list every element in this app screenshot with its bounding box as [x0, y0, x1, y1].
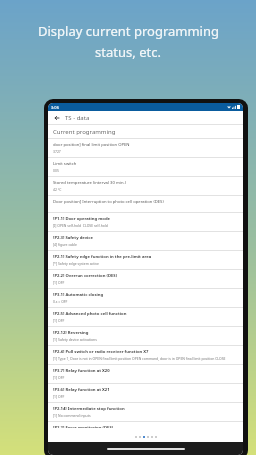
- button[interactable]: Stored temperature (interval 30 min.): [48, 177, 243, 195]
- staticText: 3:06: [51, 105, 59, 110]
- staticText: [1] OFF: [53, 375, 65, 380]
- button[interactable]: [P2.4] Pull switch or radio receiver fun…: [48, 346, 243, 364]
- staticText: [P1.1] Door operating mode: [53, 216, 111, 222]
- staticText: Display current programming: [38, 22, 219, 40]
- button[interactable]: [P2.3] Safety device: [48, 232, 243, 250]
- staticText: [P3.7] Relay function at X20: [53, 368, 110, 374]
- staticText: [P2.14] Intermediate stop function: [53, 406, 125, 412]
- button[interactable]: [P3.7] Relay function at X20: [48, 365, 243, 383]
- button[interactable]: [P2.14] Intermediate stop function: [48, 403, 243, 421]
- staticText: 42 °C: [53, 187, 62, 192]
- staticText: 3727: [53, 149, 61, 154]
- staticText: TS - data: [65, 114, 90, 122]
- staticText: [P3.6] Relay function at X21: [53, 387, 110, 393]
- staticText: [P2.5] Advanced photo cell function: [53, 311, 127, 317]
- staticText: Stored temperature (interval 30 min.): [53, 180, 126, 186]
- staticText: [1] Safety device activations: [53, 337, 97, 342]
- staticText: Limit switch: [53, 161, 77, 167]
- staticText: 005: [53, 168, 59, 173]
- staticText: [1] No commend inputs: [53, 413, 91, 418]
- button[interactable]: [P1.1] Door operating mode: [48, 213, 243, 231]
- button[interactable]: [P2.5] Advanced photo cell function: [48, 308, 243, 326]
- staticText: [1] Type 1, Door is not in OPEN final li…: [53, 356, 226, 361]
- staticText: [P2.4] Pull switch or radio receiver fun…: [53, 349, 149, 355]
- button[interactable]: door position] final limit position OPEN: [48, 139, 243, 157]
- staticText: [1] OFF: [53, 318, 65, 323]
- staticText: status, etc.: [95, 43, 161, 61]
- staticText: [1] OFF: [53, 394, 65, 399]
- button[interactable]: Limit switch: [48, 158, 243, 176]
- staticText: [P2.2] Force monitoring (DES): [53, 425, 114, 428]
- staticText: Current programming: [53, 128, 116, 136]
- staticText: 0.s = OFF: [53, 299, 68, 304]
- staticText: [P2.12] Reversing: [53, 330, 89, 336]
- staticText: [4] figure cable: [53, 242, 77, 247]
- staticText: [P2.3] Safety device: [53, 235, 94, 241]
- button[interactable]: Back: [52, 113, 62, 123]
- staticText: [P3.1] Automatic closing: [53, 292, 104, 298]
- button[interactable]: Current programming: [48, 125, 243, 138]
- staticText: [I] OPEN self-hold CLOSE self-hold: [53, 223, 108, 228]
- button[interactable]: [P2.1] Safety edge function in the pre-l…: [48, 251, 243, 269]
- staticText: Door position] Interruption to photo cel…: [53, 199, 164, 205]
- staticText: [1] OFF: [53, 280, 65, 285]
- button[interactable]: [P2.12] Reversing: [48, 327, 243, 345]
- staticText: [*] Safety edge system active: [53, 261, 99, 266]
- button[interactable]: [P2.2] Force monitoring (DES): [48, 422, 243, 431]
- button[interactable]: [P3.6] Relay function at X21: [48, 384, 243, 402]
- button[interactable]: Home: [107, 448, 185, 450]
- staticText: [P2.2] Overrun correction (DES): [53, 273, 118, 279]
- button[interactable]: [P3.1] Automatic closing: [48, 289, 243, 307]
- staticText: door position] final limit position OPEN: [53, 142, 130, 148]
- button[interactable]: [P2.2] Overrun correction (DES): [48, 270, 243, 288]
- staticText: [P2.1] Safety edge function in the pre-l…: [53, 254, 152, 260]
- button[interactable]: Door position] Interruption to photo cel…: [48, 196, 243, 212]
